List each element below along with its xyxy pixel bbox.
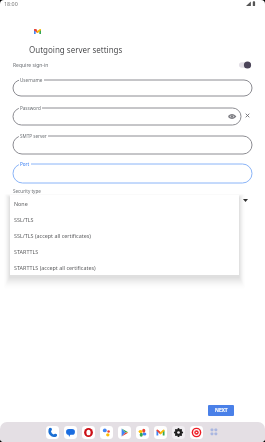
button[interactable]	[13, 108, 241, 125]
staticText: NEXT	[215, 407, 228, 414]
button[interactable]	[13, 136, 252, 154]
staticText: Require sign-in	[13, 62, 49, 69]
button[interactable]: Require sign-in toggle	[237, 59, 253, 71]
button[interactable]: Clear	[243, 111, 252, 120]
button[interactable]	[13, 164, 252, 183]
staticText: 18:00	[4, 0, 18, 7]
button[interactable]: Settings	[172, 426, 185, 439]
button[interactable]: Opera	[82, 426, 95, 439]
staticText: STARTTLS (accept all certificates)	[14, 264, 96, 271]
staticText: Password	[20, 105, 41, 111]
button[interactable]: Contacts	[100, 426, 113, 439]
staticText: Username	[20, 77, 43, 83]
button[interactable]: SSL/TLS	[10, 211, 239, 227]
button[interactable]: Gmail	[154, 426, 167, 439]
staticText: Security type	[13, 188, 41, 194]
button[interactable]: Photos	[136, 426, 149, 439]
staticText: Port	[20, 161, 30, 167]
button[interactable]: Play Store	[118, 426, 131, 439]
staticText: Outgoing server settings	[29, 44, 123, 55]
button[interactable]: All apps	[208, 426, 221, 439]
button[interactable]: NEXT	[208, 405, 234, 416]
staticText: SSL/TLS	[14, 216, 34, 223]
button[interactable]: STARTTLS	[10, 243, 239, 259]
staticText: SMTP server	[20, 133, 47, 139]
staticText: STARTTLS	[14, 248, 39, 255]
button[interactable]: Phone	[46, 426, 59, 439]
button[interactable]	[13, 80, 252, 96]
button[interactable]: SSL/TLS (accept all certificates)	[10, 227, 239, 243]
button[interactable]: None	[10, 195, 239, 211]
staticText: None	[14, 200, 28, 207]
button[interactable]: YouTube Music	[190, 426, 203, 439]
button[interactable]: Messages	[64, 426, 77, 439]
button[interactable]: STARTTLS (accept all certificates)	[10, 259, 239, 275]
staticText: SSL/TLS (accept all certificates)	[14, 232, 91, 239]
